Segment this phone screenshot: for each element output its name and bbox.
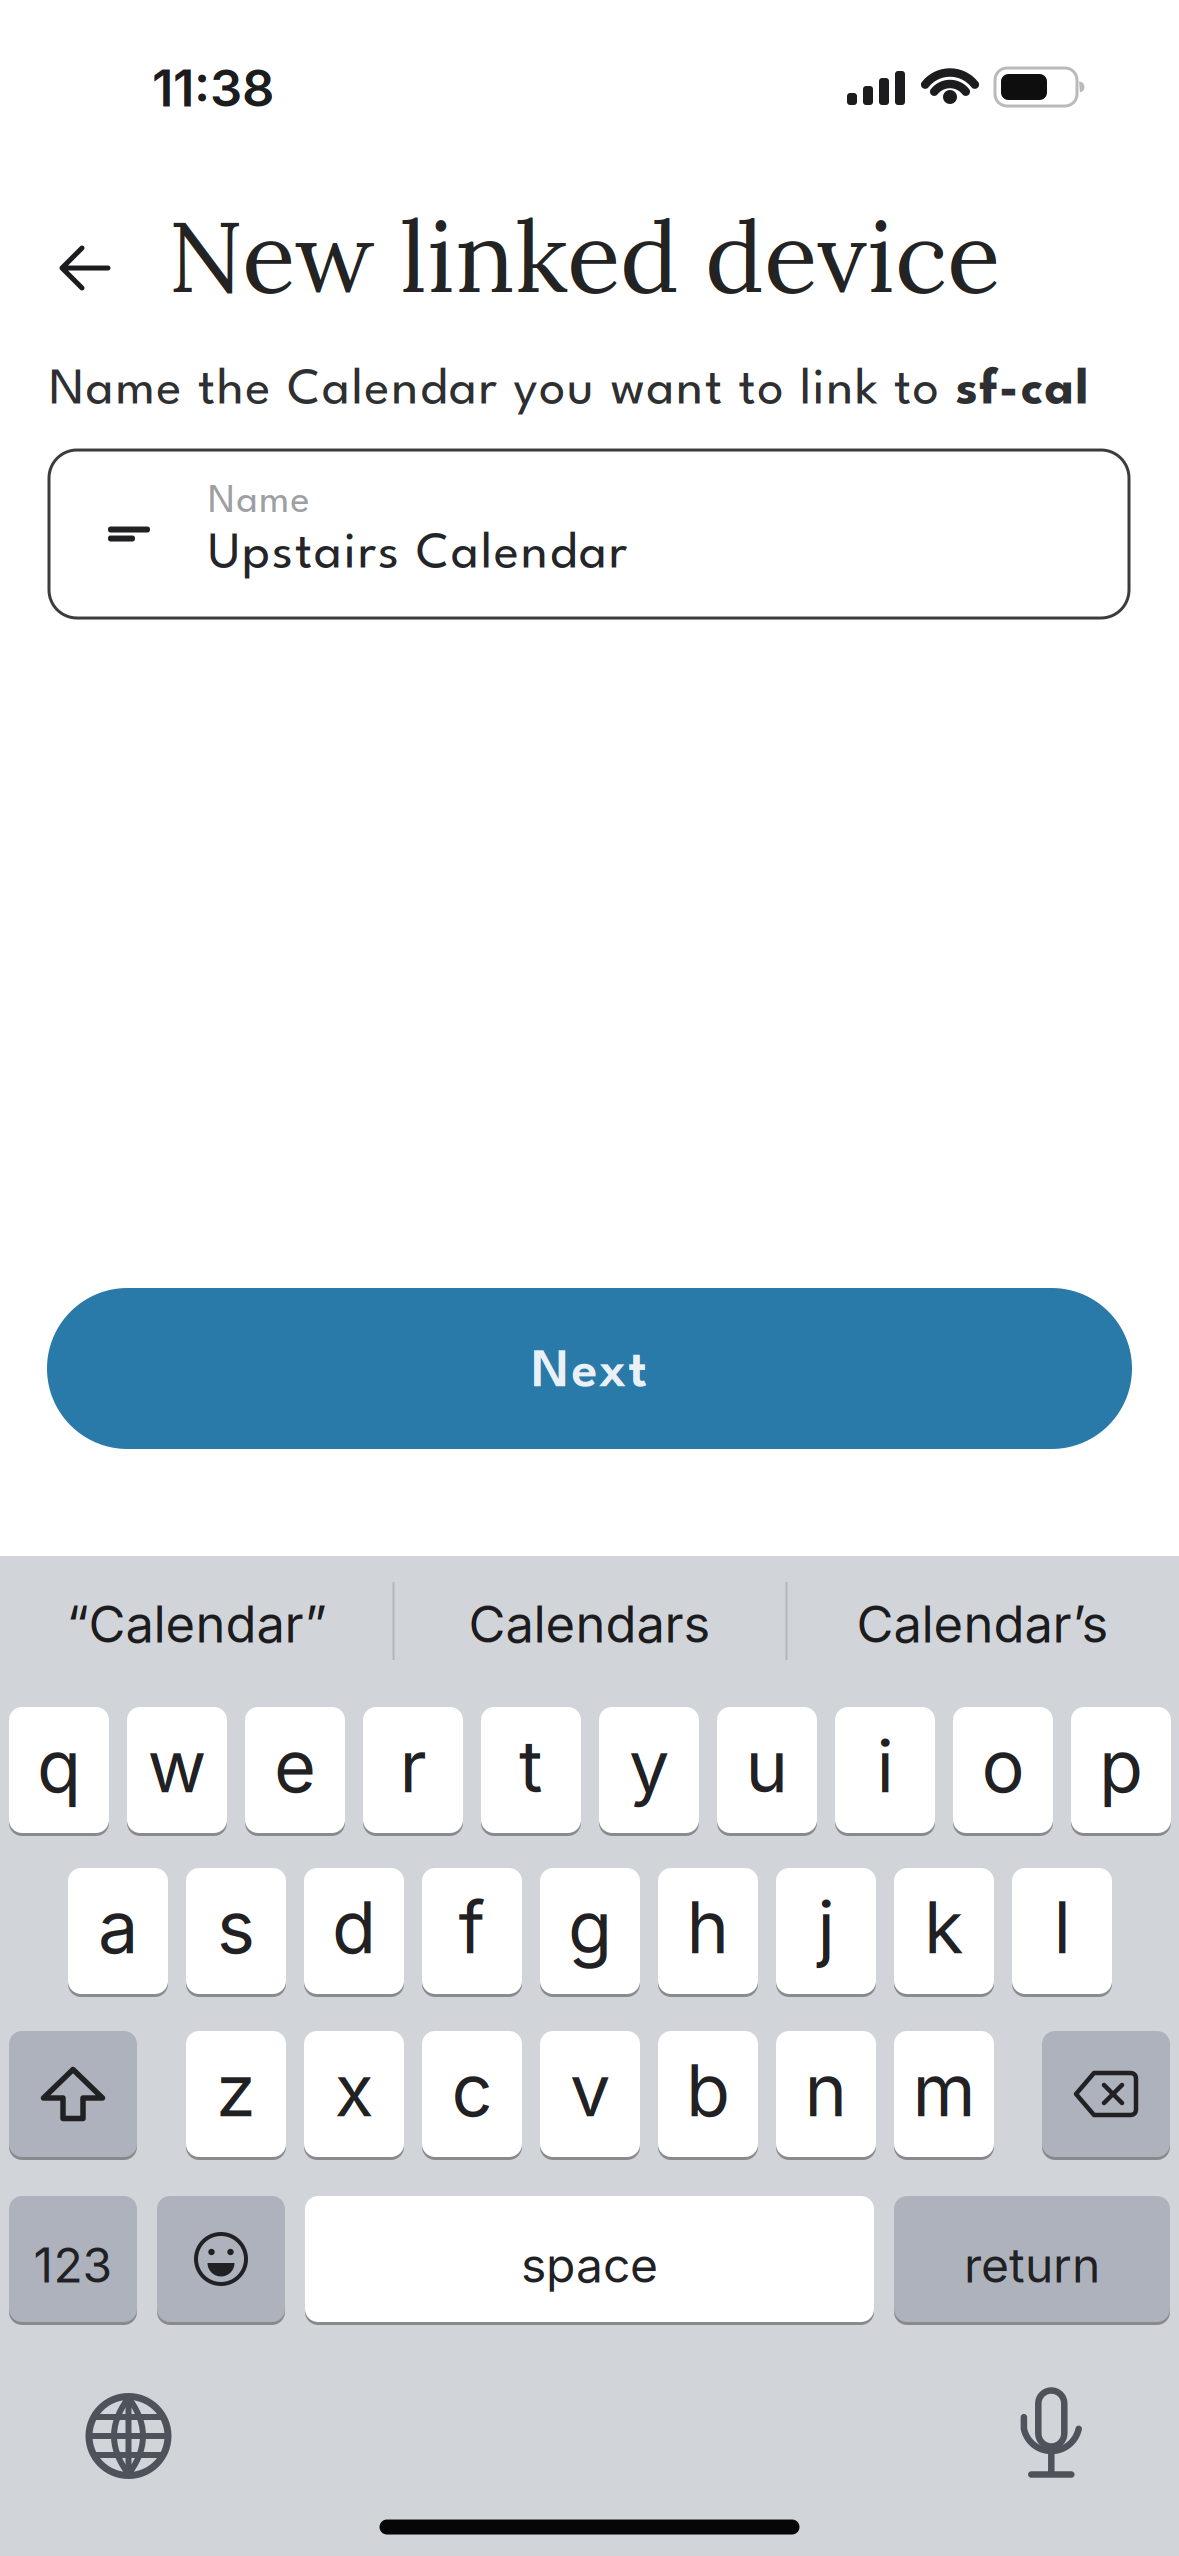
button[interactable]: Calendar’s	[812, 1569, 1152, 1679]
button[interactable]: n	[776, 2031, 876, 2157]
button[interactable]: j	[776, 1868, 876, 1994]
staticText: b	[686, 2046, 730, 2133]
button[interactable]: space	[305, 2196, 874, 2322]
staticText: 11:38	[152, 57, 274, 119]
button[interactable]: f	[422, 1868, 522, 1994]
staticText: w	[147, 1722, 206, 1809]
staticText: q	[37, 1722, 81, 1809]
staticText: o	[981, 1722, 1024, 1809]
button[interactable]: s	[186, 1868, 286, 1994]
staticText: a	[98, 1883, 138, 1970]
staticText: x	[334, 2046, 373, 2133]
staticText: l	[1053, 1883, 1070, 1970]
button[interactable]: m	[894, 2031, 994, 2157]
button[interactable]: k	[894, 1868, 994, 1994]
button[interactable]: v	[540, 2031, 640, 2157]
staticText: d	[332, 1883, 376, 1970]
staticText: g	[568, 1883, 612, 1970]
button[interactable]: 123	[9, 2196, 137, 2322]
staticText: Upstairs Calendar	[208, 531, 627, 579]
button[interactable]: Next keyboard	[86, 2394, 170, 2478]
staticText: 123	[33, 2236, 112, 2294]
staticText: s	[217, 1883, 255, 1970]
staticText: “Calendar”	[66, 1593, 326, 1655]
button[interactable]: r	[363, 1707, 463, 1833]
button[interactable]: b	[658, 2031, 758, 2157]
staticText: Next	[531, 1349, 647, 1398]
button[interactable]: y	[599, 1707, 699, 1833]
button[interactable]: t	[481, 1707, 581, 1833]
button[interactable]: return	[894, 2196, 1170, 2322]
staticText: n	[804, 2046, 847, 2133]
staticText: j	[817, 1883, 834, 1970]
staticText: f	[458, 1883, 485, 1970]
staticText: return	[964, 2236, 1100, 2294]
button[interactable]: Next	[47, 1288, 1132, 1449]
button[interactable]: Back	[58, 241, 112, 295]
staticText: z	[216, 2046, 256, 2133]
staticText: h	[686, 1883, 729, 1970]
button[interactable]: l	[1012, 1868, 1112, 1994]
button[interactable]: h	[658, 1868, 758, 1994]
button[interactable]: Calendars	[419, 1569, 759, 1679]
button[interactable]: d	[304, 1868, 404, 1994]
staticText: space	[521, 2236, 658, 2294]
button[interactable]: o	[953, 1707, 1053, 1833]
staticText: u	[745, 1722, 788, 1809]
button[interactable]: x	[304, 2031, 404, 2157]
staticText: i	[876, 1722, 893, 1809]
staticText: Name	[208, 484, 309, 521]
button[interactable]: g	[540, 1868, 640, 1994]
staticText: p	[1099, 1722, 1143, 1809]
staticText: r	[399, 1722, 426, 1809]
staticText: y	[629, 1722, 669, 1809]
button[interactable]: p	[1071, 1707, 1171, 1833]
staticText: c	[451, 2046, 492, 2133]
button[interactable]: w	[127, 1707, 227, 1833]
button[interactable]: Name	[49, 450, 1129, 618]
button[interactable]: c	[422, 2031, 522, 2157]
staticText: e	[274, 1722, 316, 1809]
staticText: New linked device	[168, 193, 1000, 319]
staticText: v	[570, 2046, 610, 2133]
button[interactable]: Delete	[1042, 2031, 1170, 2157]
staticText: m	[912, 2046, 975, 2133]
button[interactable]: e	[245, 1707, 345, 1833]
button[interactable]: Dictation	[1022, 2389, 1080, 2479]
staticText: k	[924, 1883, 964, 1970]
button[interactable]: u	[717, 1707, 817, 1833]
staticText: Calendar’s	[856, 1593, 1108, 1655]
button[interactable]: z	[186, 2031, 286, 2157]
button[interactable]: Shift	[9, 2031, 137, 2157]
staticText: t	[519, 1722, 543, 1809]
staticText: Calendars	[468, 1593, 710, 1655]
staticText: Name the Calendar you want to link to sf…	[49, 368, 1088, 414]
button[interactable]: “Calendar”	[26, 1569, 366, 1679]
button[interactable]: q	[9, 1707, 109, 1833]
button[interactable]: a	[68, 1868, 168, 1994]
button[interactable]: i	[835, 1707, 935, 1833]
button[interactable]: Emoji	[157, 2196, 285, 2322]
